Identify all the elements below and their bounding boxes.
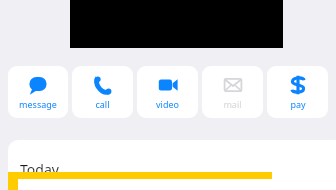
staticText: mail bbox=[223, 98, 242, 110]
staticText: message bbox=[19, 98, 57, 110]
button[interactable]: video bbox=[137, 66, 198, 118]
button[interactable]: mail bbox=[202, 66, 263, 118]
button[interactable]: call bbox=[72, 66, 133, 118]
staticText: video bbox=[156, 98, 179, 110]
button[interactable]: pay bbox=[267, 66, 328, 118]
button[interactable] bbox=[8, 172, 272, 190]
button[interactable]: message bbox=[8, 66, 68, 118]
staticText: Today bbox=[20, 160, 59, 179]
staticText: call bbox=[95, 98, 110, 110]
staticText: pay bbox=[290, 98, 306, 110]
